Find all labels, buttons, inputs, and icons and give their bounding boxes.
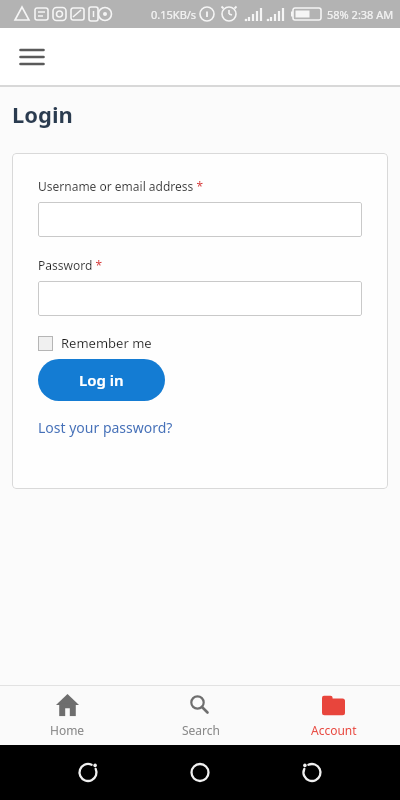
staticText: Username or email address * [38, 178, 204, 194]
staticText: Remember me [61, 334, 152, 352]
staticText: 58% 2:38 AM [327, 7, 394, 22]
button[interactable]: Remember me [38, 334, 152, 352]
button[interactable]: Home [0, 686, 134, 745]
staticText: Search [182, 722, 220, 738]
button[interactable]: Log in [38, 359, 165, 401]
staticText: Log in [79, 370, 124, 390]
button[interactable] [14, 39, 50, 75]
button[interactable]: Account [267, 686, 400, 745]
button[interactable] [38, 202, 362, 237]
button[interactable]: Lost your password? [38, 418, 173, 437]
button[interactable]: Search [134, 686, 267, 745]
staticText: Password * [38, 257, 103, 273]
staticText: Login [12, 99, 73, 129]
staticText: Account [311, 722, 357, 738]
button[interactable] [38, 281, 362, 316]
staticText: Home [50, 722, 85, 738]
staticText: 0.15KB/s [151, 7, 197, 22]
